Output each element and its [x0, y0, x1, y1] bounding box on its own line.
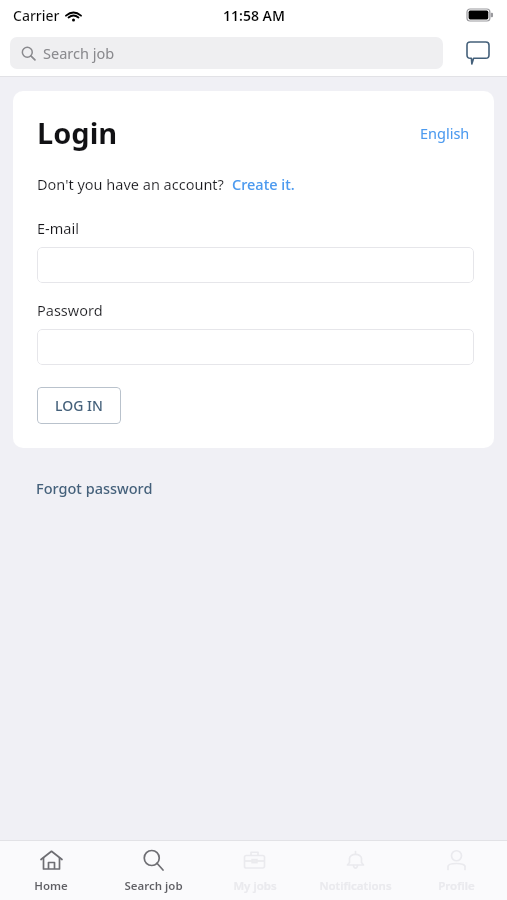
staticText: Carrier [13, 6, 60, 25]
button[interactable]: Search job [102, 841, 204, 900]
staticText: Notifications [319, 878, 392, 894]
button[interactable]: Create it. [232, 174, 295, 194]
staticText: Don't you have an account? [37, 174, 224, 194]
button[interactable]: My jobs [204, 841, 305, 900]
staticText: Search job [43, 43, 115, 63]
button[interactable] [37, 329, 474, 365]
staticText: Home [34, 878, 68, 894]
button[interactable] [37, 247, 474, 283]
staticText: My jobs [233, 878, 277, 894]
button[interactable]: Messages [459, 34, 497, 72]
staticText: Password [37, 300, 103, 320]
button[interactable]: English [416, 119, 474, 147]
button[interactable]: Forgot password [36, 478, 153, 498]
staticText: 11:58 AM [223, 6, 285, 25]
staticText: E-mail [37, 218, 79, 238]
staticText: Profile [438, 878, 475, 894]
button[interactable]: Search job [10, 37, 443, 69]
button[interactable]: LOG IN [37, 387, 121, 424]
button[interactable]: Notifications [305, 841, 406, 900]
staticText: Login [37, 113, 416, 152]
button[interactable]: Home [0, 841, 102, 900]
staticText: LOG IN [55, 396, 103, 415]
staticText: Search job [124, 878, 183, 894]
